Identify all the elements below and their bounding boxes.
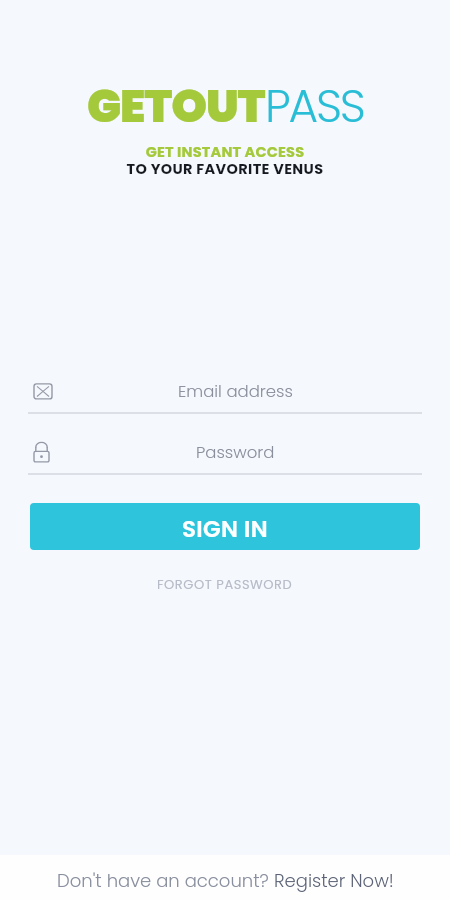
button[interactable]: Don't have an account? [49,864,402,897]
other: Email address [28,376,52,400]
staticText: GETOUT [87,74,265,138]
staticText: TO YOUR FAVORITE VENUS [0,159,450,179]
staticText: Don't have an account? [57,868,274,893]
staticText: Email address [178,380,293,403]
button[interactable]: Password [28,442,422,475]
button[interactable]: Email address [28,381,422,414]
staticText: Register Now! [274,868,394,893]
button[interactable]: SIGN IN [30,503,420,550]
staticText: PASS [265,74,364,138]
staticText: GET INSTANT ACCESS [0,142,450,162]
staticText: SIGN IN [182,513,268,545]
staticText: Password [196,441,275,464]
button[interactable]: FORGOT PASSWORD [145,570,305,598]
staticText: FORGOT PASSWORD [157,575,293,593]
other: Password [28,437,52,461]
